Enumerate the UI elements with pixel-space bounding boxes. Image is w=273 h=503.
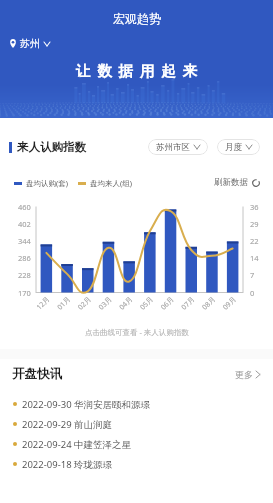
button[interactable]: 月度 xyxy=(217,139,260,155)
staticText: 刷新数据 xyxy=(214,177,248,188)
staticText: 2022-09-24 中建笠泽之星 xyxy=(22,438,132,451)
button[interactable]: 刷新数据 xyxy=(214,177,260,188)
staticText: 让数据用起来 xyxy=(76,62,204,80)
staticText: 宏观趋势 xyxy=(113,11,161,26)
staticText: 2022-09-18 玲珑源璟 xyxy=(22,458,113,471)
staticText: 点击曲线可查看 - 来人认购指数 xyxy=(85,327,189,337)
button[interactable]: 苏州 xyxy=(9,37,50,50)
button[interactable]: 2022-09-18 玲珑源璟 xyxy=(0,454,273,474)
button[interactable]: 2022-09-30 华润安居颐和源璟 xyxy=(0,394,273,414)
button[interactable]: 2022-09-24 中建笠泽之星 xyxy=(0,434,273,454)
other: Refresh xyxy=(252,179,260,187)
button[interactable]: 苏州市区 xyxy=(148,139,208,155)
staticText: 来人认购指数 xyxy=(17,140,86,154)
staticText: 2022-09-30 华润安居颐和源璟 xyxy=(22,398,151,411)
button[interactable]: 更多 xyxy=(235,369,260,380)
staticText: 开盘快讯 xyxy=(12,366,62,382)
staticText: 苏州 xyxy=(20,37,40,50)
button[interactable]: 2022-09-29 前山涧庭 xyxy=(0,414,273,434)
staticText: 2022-09-29 前山涧庭 xyxy=(22,418,113,431)
staticText: 苏州市区 xyxy=(156,142,190,153)
staticText: 更多 xyxy=(235,369,253,380)
staticText: 月度 xyxy=(225,142,242,153)
staticText: 盘均认购(套) xyxy=(26,178,68,188)
staticText: 盘均来人(组) xyxy=(90,178,132,188)
